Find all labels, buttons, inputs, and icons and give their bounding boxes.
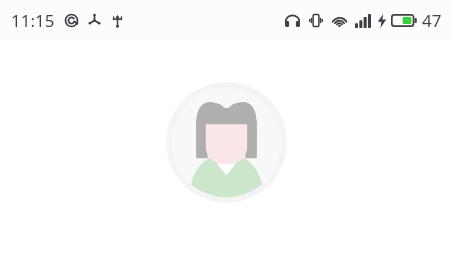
staticText: 11:15	[11, 9, 55, 32]
staticText: 47	[422, 9, 442, 32]
button[interactable]: Profile photo	[166, 82, 287, 203]
